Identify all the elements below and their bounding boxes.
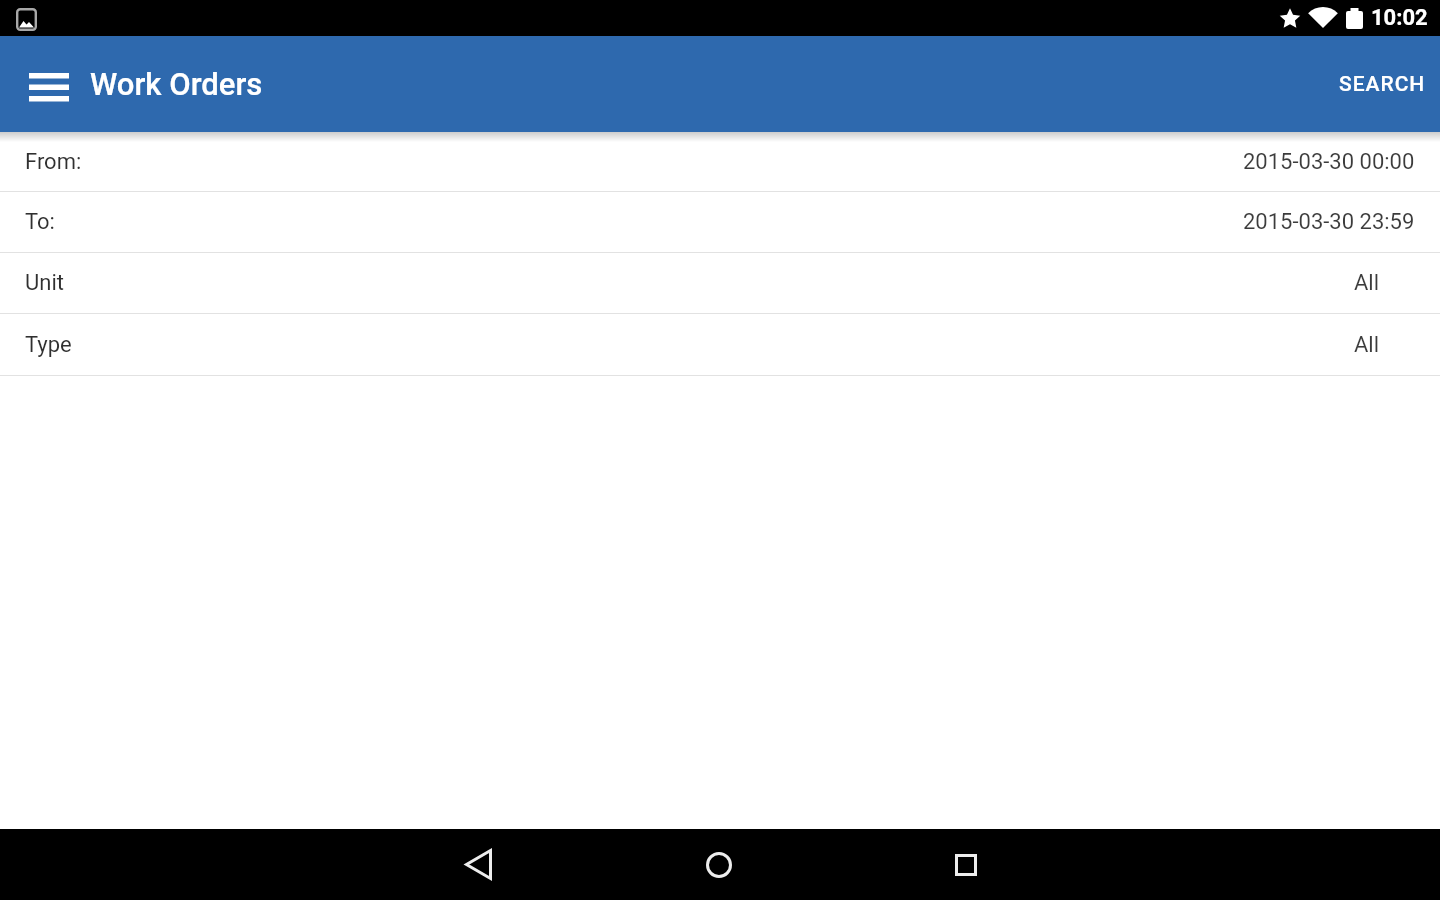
staticText: Type	[25, 332, 72, 358]
button[interactable]: Type	[0, 314, 1440, 376]
button[interactable]: From:	[0, 132, 1440, 192]
button[interactable]	[942, 829, 990, 900]
button[interactable]	[695, 829, 743, 900]
staticText: 2015-03-30 23:59	[1243, 209, 1415, 235]
button[interactable]: Unit	[0, 253, 1440, 314]
staticText: Unit	[25, 270, 64, 296]
staticText: From:	[25, 149, 82, 175]
button[interactable]: To:	[0, 192, 1440, 253]
staticText: 10:02	[1371, 5, 1428, 31]
staticText: To:	[25, 209, 55, 235]
staticText: All	[1354, 270, 1380, 296]
button[interactable]	[454, 829, 502, 900]
button[interactable]	[0, 36, 97, 132]
staticText: All	[1354, 332, 1380, 358]
button[interactable]: SEARCH	[1325, 36, 1440, 132]
staticText: 2015-03-30 00:00	[1243, 149, 1415, 175]
staticText: Work Orders	[90, 66, 263, 102]
staticText: SEARCH	[1339, 72, 1426, 97]
